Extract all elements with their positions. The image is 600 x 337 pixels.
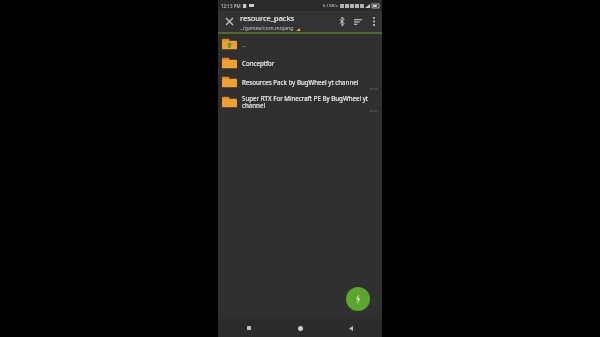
- staticText: Conceptfor: [242, 59, 275, 67]
- button[interactable]: Sort: [350, 11, 366, 32]
- staticText: Super RTX For Minecraft PE By BugWheel y…: [242, 94, 370, 110]
- button[interactable]: resource_packs: [240, 13, 334, 31]
- button[interactable]: Resources Pack by BugWheel yt channel: [218, 72, 382, 91]
- staticText: resource_packs: [240, 13, 295, 23]
- staticText: ..: [242, 40, 246, 48]
- button[interactable]: Connect: [334, 11, 350, 32]
- button[interactable]: More options: [366, 11, 382, 32]
- button[interactable]: Close: [218, 11, 240, 32]
- button[interactable]: ..: [218, 34, 382, 53]
- staticText: drwx: [370, 108, 379, 113]
- button[interactable]: Home: [291, 319, 309, 337]
- staticText: Resources Pack by BugWheel yt channel: [242, 78, 359, 86]
- button[interactable]: Conceptfor: [218, 53, 382, 72]
- button[interactable]: Recent apps: [240, 319, 258, 337]
- staticText: 6.1KB/s: [323, 3, 338, 9]
- button[interactable]: Super RTX For Minecraft PE By BugWheel y…: [218, 91, 382, 113]
- button[interactable]: Add: [346, 287, 370, 311]
- staticText: 12:13 PM: [221, 3, 241, 9]
- staticText: drwx: [370, 86, 379, 91]
- button[interactable]: Back: [342, 319, 360, 337]
- staticText: ../games/com.mojang: [240, 24, 294, 31]
